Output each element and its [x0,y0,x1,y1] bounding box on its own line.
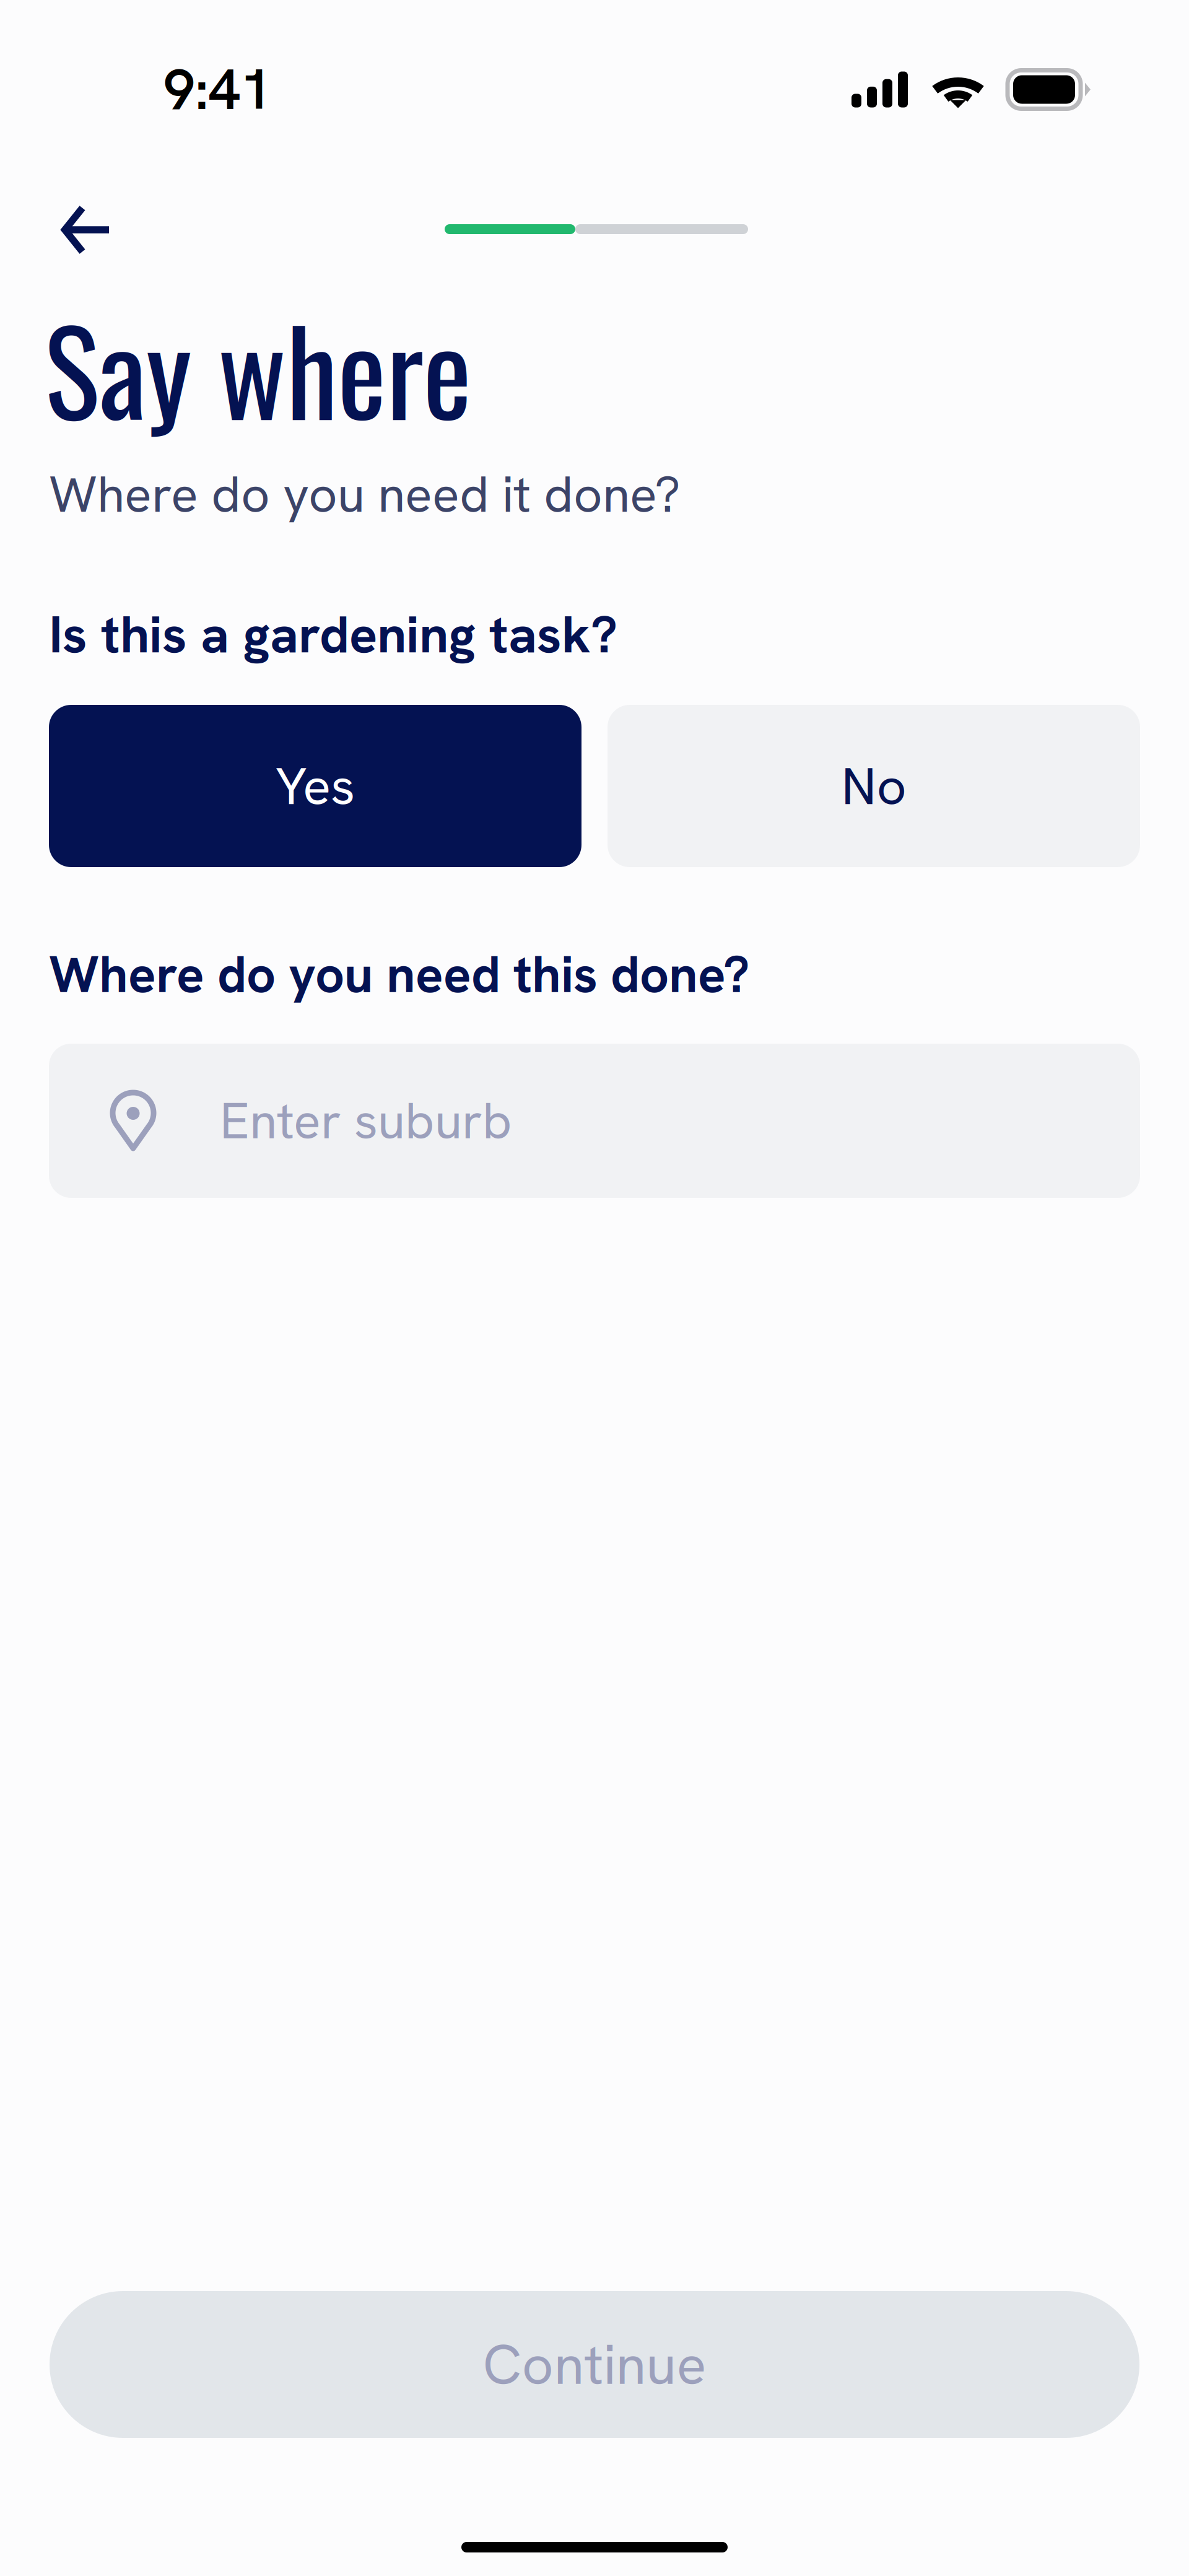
button[interactable]: Back [0,175,136,277]
staticText: Where do you need this done? [49,941,750,1008]
staticText: Enter suburb [220,1088,512,1154]
button[interactable]: Continue [50,2291,1139,2438]
staticText: Is this a gardening task? [49,600,617,668]
button[interactable]: Yes [49,705,581,867]
staticText: Where do you need it done? [49,461,681,527]
staticText: No [841,752,906,820]
staticText: Yes [276,752,355,820]
staticText: 9:41 [163,53,272,126]
staticText: Continue [483,2328,706,2401]
button[interactable]: No [608,705,1140,867]
staticText: Say where [45,282,472,454]
button[interactable]: Enter suburb [49,1044,1140,1198]
